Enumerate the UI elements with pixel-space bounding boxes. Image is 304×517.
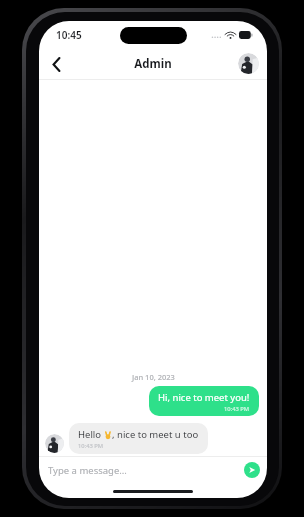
staticText: Type a message... bbox=[48, 464, 127, 477]
staticText: Hi, nice to meet you! bbox=[158, 391, 250, 404]
button[interactable]: Hi, nice to meet you! bbox=[149, 386, 259, 416]
staticText: 10:43 PM bbox=[224, 405, 250, 413]
button[interactable]: Send bbox=[244, 462, 260, 478]
staticText: 10:43 PM bbox=[78, 442, 104, 450]
staticText: Jan 10, 2023 bbox=[132, 372, 175, 382]
staticText: 10:45 bbox=[56, 28, 82, 42]
staticText: , nice to meet u too bbox=[112, 428, 199, 441]
button[interactable]: Back bbox=[43, 51, 69, 77]
staticText: Admin bbox=[134, 56, 172, 72]
staticText: Hello bbox=[78, 428, 104, 441]
button[interactable]: Profile bbox=[238, 53, 259, 74]
button[interactable]: Type a message... bbox=[48, 457, 244, 483]
button[interactable]: Hello bbox=[69, 423, 208, 454]
